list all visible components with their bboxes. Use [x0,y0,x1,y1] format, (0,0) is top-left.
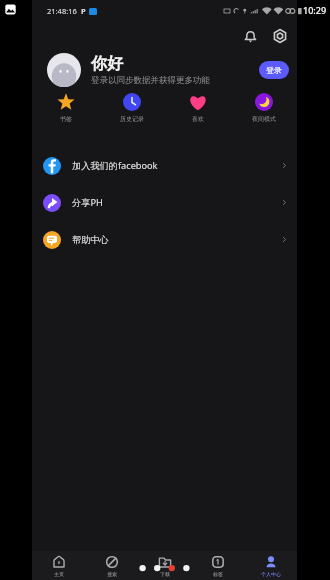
button[interactable]: 主页 [32,551,85,580]
button[interactable]: 你好 [32,50,297,90]
button[interactable]: 个人中心 [244,551,297,580]
staticText: 加入我们的facebook [72,159,158,172]
button[interactable]: 加入我们的facebook [32,147,297,184]
staticText: 下载 [160,571,170,577]
button[interactable]: 书签 [32,90,99,134]
button[interactable]: 下载 [138,551,191,580]
staticText: 历史记录 [120,115,144,123]
button[interactable]: Settings [269,25,291,47]
staticText: 喜欢 [192,115,204,123]
button[interactable]: 喜欢 [165,90,231,134]
staticText: 搜索 [107,571,117,577]
staticText: 书签 [60,115,72,123]
button[interactable]: 帮助中心 [32,221,297,258]
button[interactable]: 登录 [259,61,289,79]
staticText: 10:29 [303,4,327,16]
staticText: 帮助中心 [72,234,109,246]
button[interactable]: Notifications [239,25,261,47]
button[interactable]: 标签 [191,551,244,580]
staticText: 登录以同步数据并获得更多功能 [91,75,210,86]
staticText: 你好 [91,54,123,74]
staticText: 21:48:16 [47,6,77,16]
button[interactable]: 历史记录 [99,90,165,134]
staticText: P [81,6,86,16]
staticText: 标签 [213,571,223,577]
staticText: 登录 [266,65,282,75]
button[interactable]: 夜间模式 [231,90,297,134]
staticText: 个人中心 [261,571,281,577]
button[interactable]: 搜索 [85,551,138,580]
staticText: 夜间模式 [252,115,276,123]
staticText: 主页 [54,571,64,577]
button[interactable]: 分享PH [32,184,297,221]
staticText: 分享PH [72,196,103,209]
